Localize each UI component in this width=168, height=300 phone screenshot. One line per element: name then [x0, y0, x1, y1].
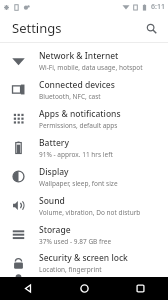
- staticText: Wallpaper, sleep, font size: [39, 179, 118, 188]
- staticText: Wi-Fi, mobile, data usage, hotspot: [39, 63, 143, 72]
- staticText: Security & screen lock: [39, 252, 128, 264]
- button[interactable]: Network & Internet: [0, 46, 168, 75]
- staticText: Sound: [39, 195, 65, 207]
- button[interactable]: Battery: [0, 133, 168, 162]
- button[interactable]: Search settings: [140, 17, 162, 39]
- staticText: Storage: [39, 224, 71, 236]
- button[interactable]: Recent apps: [112, 277, 168, 300]
- button[interactable]: Security & screen lock: [0, 249, 168, 277]
- staticText: Volume, vibration, Do not disturb: [39, 208, 141, 217]
- staticText: 37% used - 9.87 GB free: [39, 237, 112, 246]
- staticText: Display: [39, 166, 69, 178]
- button[interactable]: Sound: [0, 191, 168, 220]
- staticText: Location, fingerprint: [39, 265, 102, 274]
- staticText: 91% - approx. 11 hrs left: [39, 150, 113, 159]
- staticText: 6:11: [151, 2, 165, 12]
- button[interactable]: Display: [0, 162, 168, 191]
- staticText: Network & Internet: [39, 50, 119, 62]
- staticText: Permissions, default apps: [39, 121, 118, 130]
- button[interactable]: Apps & notifications: [0, 104, 168, 133]
- button[interactable]: Back: [0, 277, 56, 300]
- staticText: Battery: [39, 137, 69, 149]
- staticText: Connected devices: [39, 79, 115, 91]
- staticText: Apps & notifications: [39, 108, 121, 120]
- button[interactable]: Storage: [0, 220, 168, 249]
- button[interactable]: Home: [56, 277, 112, 300]
- staticText: Bluetooth, NFC, cast: [39, 92, 101, 101]
- button[interactable]: Connected devices: [0, 75, 168, 104]
- staticText: Settings: [12, 19, 62, 37]
